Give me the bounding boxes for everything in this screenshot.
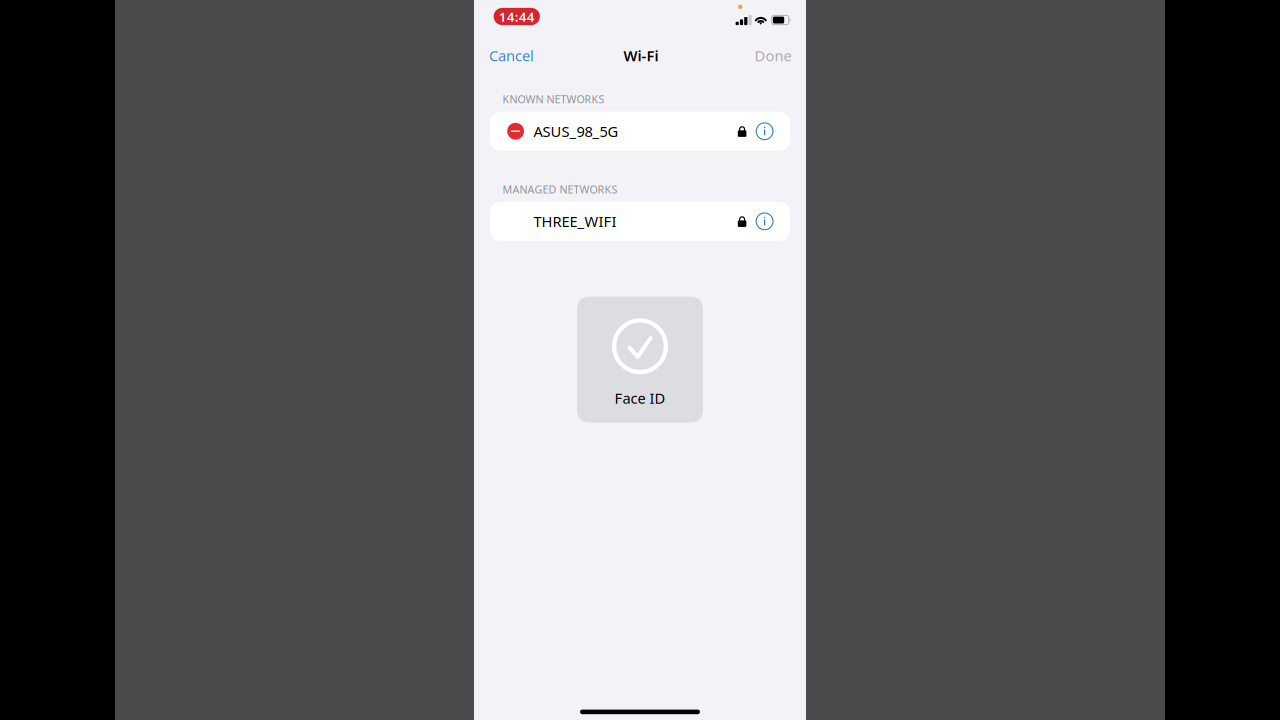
staticText: Done (755, 46, 792, 65)
button[interactable]: Done (755, 43, 792, 67)
staticText: MANAGED NETWORKS (503, 182, 618, 196)
staticText: Cancel (489, 46, 534, 65)
button[interactable]: More info about THREE_WIFI (756, 212, 774, 230)
staticText: 14:44 (499, 8, 535, 25)
staticText: ASUS_98_5G (534, 121, 619, 141)
staticText: Face ID (614, 388, 665, 408)
staticText: KNOWN NETWORKS (503, 92, 605, 106)
staticText: THREE_WIFI (534, 212, 617, 231)
button[interactable]: Forget ASUS_98_5G (507, 123, 524, 140)
button[interactable]: More info about ASUS_98_5G (756, 122, 774, 140)
button[interactable]: Cancel (489, 43, 534, 67)
staticText: Wi-Fi (624, 46, 659, 65)
button[interactable]: THREE_WIFI (490, 202, 790, 241)
button[interactable]: ASUS_98_5G (490, 112, 790, 151)
